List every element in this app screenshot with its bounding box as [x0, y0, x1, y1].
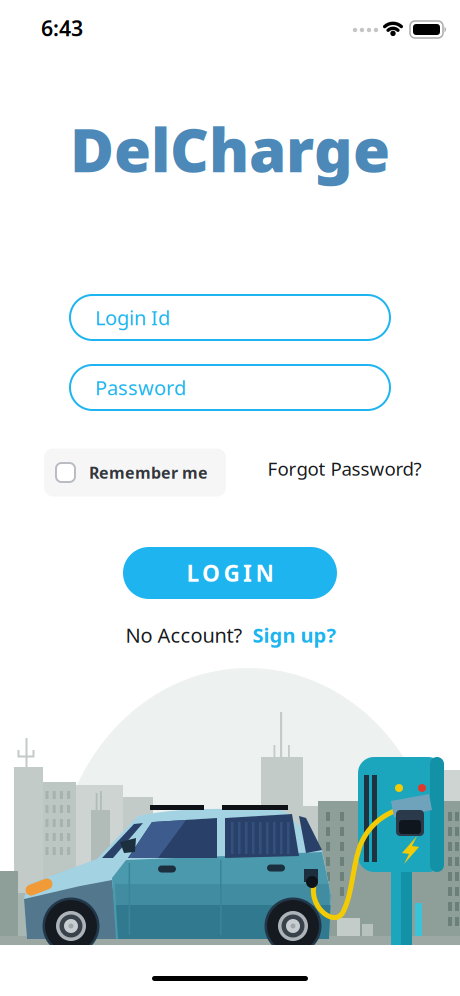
button[interactable]: Remember me [44, 448, 226, 496]
staticText: Remember me [89, 462, 208, 483]
button[interactable]: LOGIN [123, 547, 337, 599]
button[interactable]: Sign up? [252, 622, 336, 648]
staticText: No Account? [125, 622, 242, 648]
staticText: 6:43 [41, 14, 83, 42]
staticText: Login Id [95, 304, 170, 331]
staticText: LOGIN [186, 558, 273, 588]
staticText: Forgot Password? [267, 456, 421, 481]
staticText: DelCharge [70, 109, 390, 189]
button[interactable]: Login Id [70, 295, 390, 340]
button[interactable]: Forgot Password? [267, 456, 421, 481]
staticText: Password [95, 374, 186, 401]
button[interactable]: Password [70, 365, 390, 410]
staticText: Sign up? [252, 622, 336, 648]
